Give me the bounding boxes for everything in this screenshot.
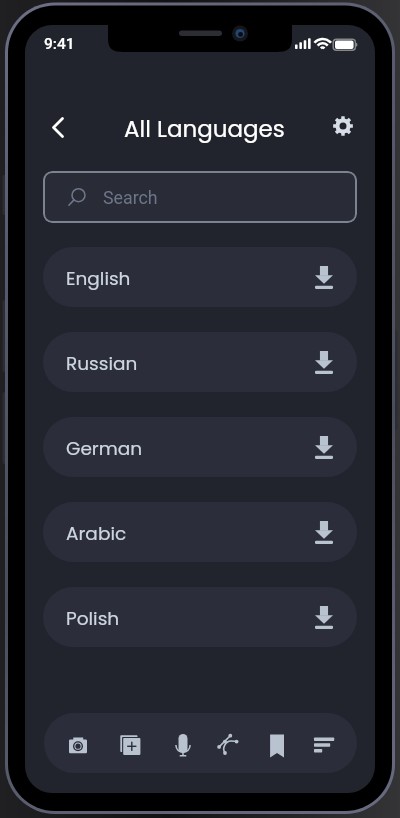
button[interactable]: Download German <box>315 436 333 459</box>
button[interactable]: German <box>43 417 357 477</box>
button[interactable]: Sort <box>306 721 344 765</box>
staticText: 9:41 <box>44 35 75 53</box>
button[interactable]: Download Russian <box>315 351 333 374</box>
button[interactable]: Camera <box>58 721 96 765</box>
button[interactable]: English <box>43 247 357 307</box>
staticText: Arabic <box>66 521 127 547</box>
button[interactable]: Download English <box>315 266 333 289</box>
button[interactable]: Curve tool <box>207 721 245 765</box>
button[interactable]: Voice input <box>157 721 195 765</box>
button[interactable]: Settings <box>323 111 363 145</box>
staticText: Search <box>103 187 158 208</box>
button[interactable]: Arabic <box>43 502 357 562</box>
button[interactable]: Search <box>43 171 357 223</box>
staticText: Russian <box>66 351 138 377</box>
staticText: English <box>66 266 131 292</box>
button[interactable]: Download Arabic <box>315 521 333 544</box>
staticText: All Languages <box>124 113 285 145</box>
button[interactable]: Russian <box>43 332 357 392</box>
staticText: Polish <box>66 606 120 632</box>
staticText: German <box>66 436 143 462</box>
button[interactable]: Back <box>39 111 79 145</box>
button[interactable]: Download Polish <box>315 606 333 629</box>
button[interactable]: Add <box>108 721 146 765</box>
button[interactable]: Polish <box>43 587 357 647</box>
button[interactable]: Bookmarks <box>256 721 294 765</box>
